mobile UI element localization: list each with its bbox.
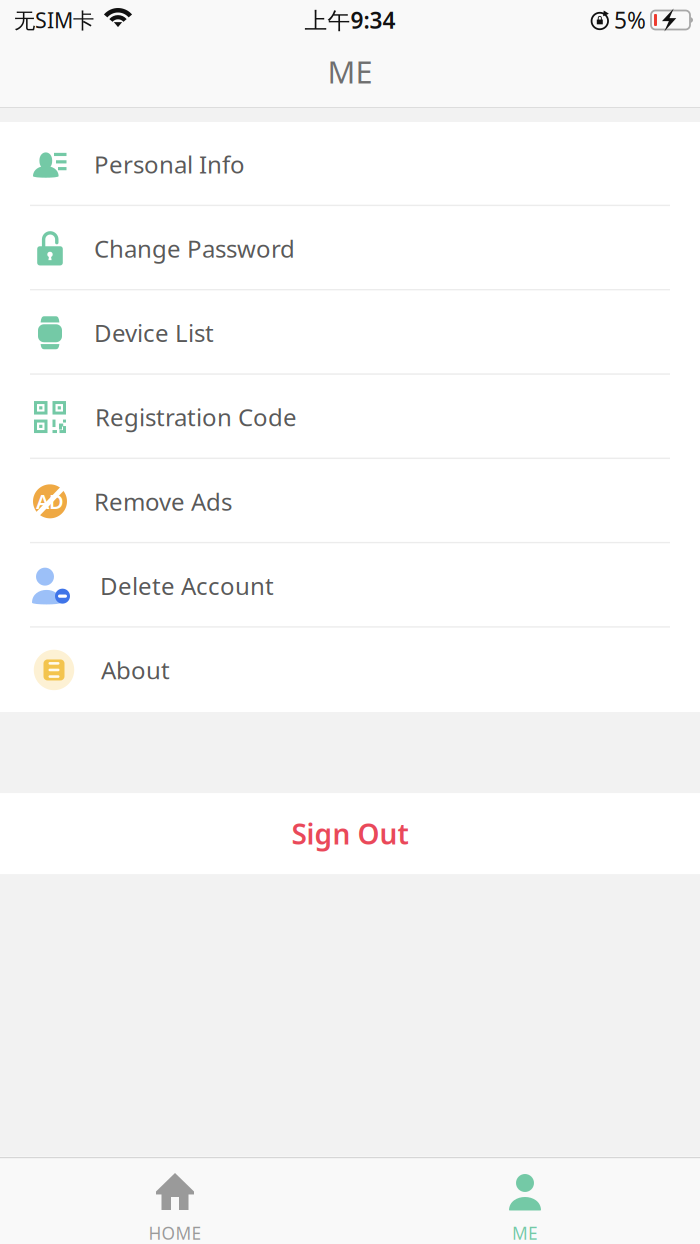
button[interactable]: HOME [0,1157,350,1243]
button[interactable]: About [0,628,700,712]
staticText: Device List [94,317,214,349]
staticText: Change Password [94,232,295,264]
button[interactable]: ME [350,1157,700,1243]
staticText: About [101,654,170,686]
staticText: HOME [148,1221,201,1244]
staticText: ME [512,1221,538,1244]
staticText: Personal Info [94,148,245,180]
staticText: Remove Ads [94,485,232,517]
button[interactable]: Personal Info [0,122,700,206]
staticText: 无SIM卡 [14,6,94,34]
staticText: 5% [614,5,646,35]
button[interactable]: Change Password [0,206,700,291]
staticText: Registration Code [95,401,297,433]
button[interactable]: Registration Code [0,375,700,459]
button[interactable]: Delete Account [0,543,700,628]
staticText: Delete Account [100,570,274,602]
button[interactable]: AD [0,459,700,543]
button[interactable]: Device List [0,291,700,375]
staticText: AD [36,488,64,515]
staticText: Sign Out [291,815,408,852]
staticText: 上午9:34 [304,5,395,35]
button[interactable]: Sign Out [0,793,700,874]
staticText: ME [327,51,372,92]
